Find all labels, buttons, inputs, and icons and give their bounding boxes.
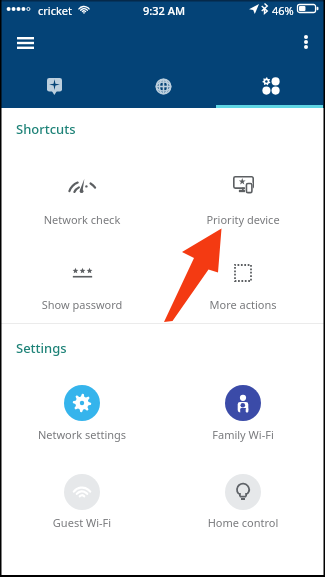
button[interactable]: Home control: [163, 470, 325, 540]
button[interactable]: More actions: [163, 250, 325, 320]
button[interactable]: Family Wi-Fi: [163, 380, 325, 450]
staticText: 9:32 AM: [114, 3, 214, 18]
staticText: More actions: [163, 297, 323, 312]
button[interactable]: Wifi points tab: [0, 66, 109, 108]
staticText: Home control: [163, 515, 323, 530]
staticText: Settings: [16, 339, 67, 357]
button[interactable]: Network check: [0, 160, 162, 230]
button[interactable]: Open navigation menu: [8, 24, 42, 58]
staticText: Family Wi-Fi: [163, 427, 323, 442]
staticText: Network check: [2, 212, 162, 227]
button[interactable]: Priority device: [163, 160, 325, 230]
staticText: 46%: [272, 3, 294, 18]
staticText: Network settings: [2, 427, 162, 442]
button[interactable]: Network tab: [109, 66, 217, 108]
button[interactable]: More options: [289, 24, 323, 58]
button[interactable]: Network settings: [0, 380, 162, 450]
button[interactable]: Guest Wi-Fi: [0, 470, 162, 540]
staticText: Shortcuts: [16, 120, 76, 138]
staticText: cricket: [38, 3, 72, 18]
button[interactable]: Show password: [0, 250, 162, 320]
button[interactable]: Shortcuts tab: [217, 66, 325, 108]
staticText: Priority device: [163, 212, 323, 227]
staticText: Show password: [2, 297, 162, 312]
staticText: Guest Wi-Fi: [2, 515, 162, 530]
